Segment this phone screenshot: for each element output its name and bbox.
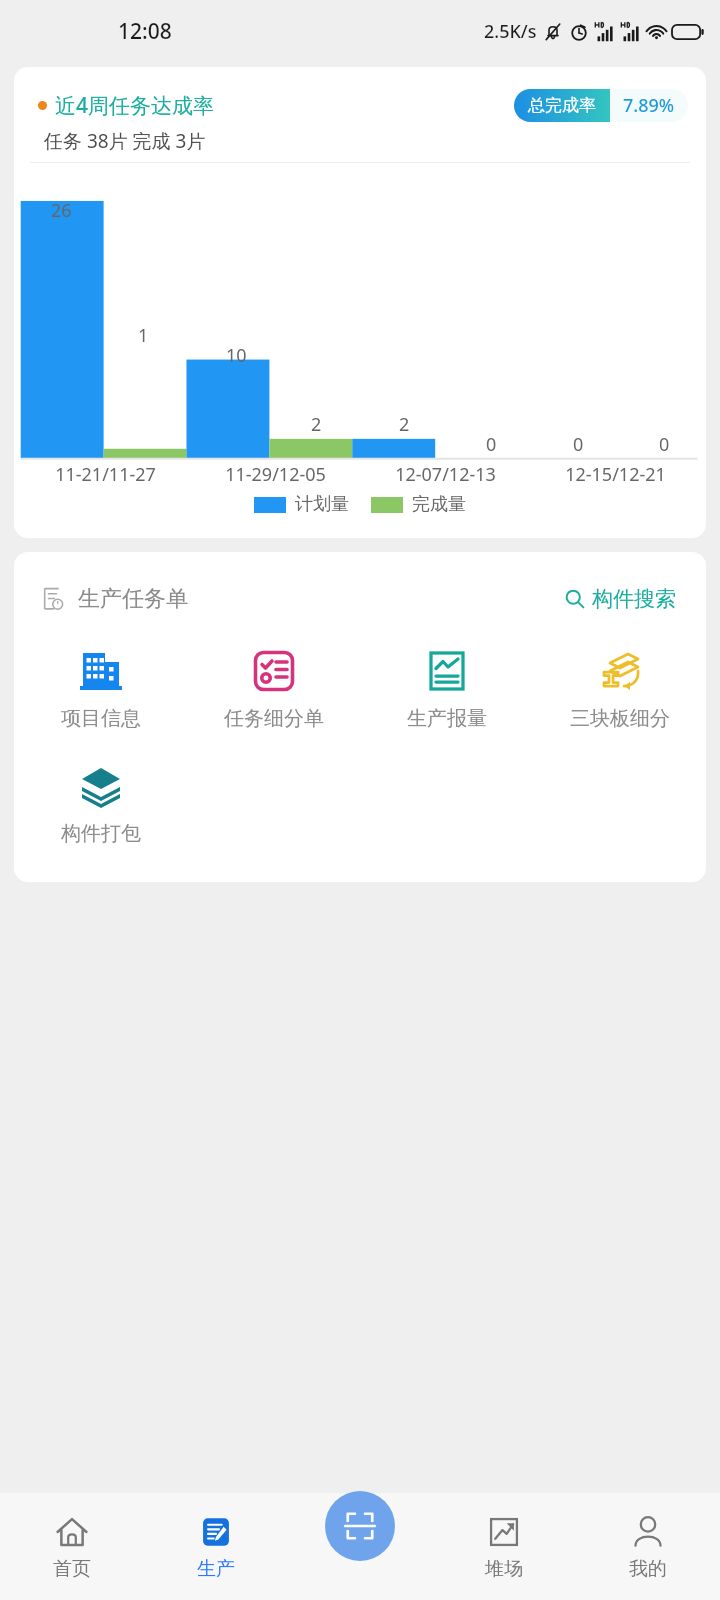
staticText: 0 <box>486 432 497 457</box>
staticText: 我的 <box>629 1557 667 1581</box>
staticText: 生产报量 <box>407 706 487 731</box>
staticText: 三块板细分 <box>570 706 670 731</box>
staticText: 1 <box>138 323 149 348</box>
button[interactable]: 扫一扫 <box>325 1491 395 1561</box>
staticText: 堆场 <box>485 1557 523 1581</box>
staticText: 11-21/11-27 <box>55 462 156 487</box>
staticText: 构件打包 <box>61 821 141 846</box>
staticText: 0 <box>659 432 670 457</box>
button[interactable]: 总完成率 <box>514 89 688 122</box>
staticText: 项目信息 <box>61 706 141 731</box>
staticText: 12:08 <box>118 17 172 46</box>
staticText: 2 <box>311 412 322 437</box>
button[interactable]: 堆场 <box>432 1493 576 1600</box>
staticText: 12-15/12-21 <box>565 462 666 487</box>
staticText: 构件搜索 <box>592 586 676 612</box>
staticText: 近4周任务达成率 <box>55 91 215 120</box>
button[interactable]: 构件打包 <box>14 757 187 850</box>
staticText: 2.5K/s <box>484 19 537 44</box>
staticText: 计划量 <box>295 493 349 516</box>
staticText: 2 <box>399 412 410 437</box>
staticText: 首页 <box>53 1557 91 1581</box>
button[interactable]: 首页 <box>0 1493 144 1600</box>
staticText: 26 <box>51 198 72 223</box>
button[interactable]: 项目信息 <box>14 642 187 735</box>
button[interactable]: 生产报量 <box>360 642 533 735</box>
staticText: 生产 <box>197 1557 235 1581</box>
staticText: 任务细分单 <box>224 706 324 731</box>
button[interactable]: 任务细分单 <box>187 642 360 735</box>
staticText: 任务 38片 完成 3片 <box>44 128 206 154</box>
button[interactable]: 三块板细分 <box>533 642 706 735</box>
staticText: 11-29/12-05 <box>225 462 326 487</box>
staticText: 12-07/12-13 <box>395 462 496 487</box>
staticText: 完成量 <box>412 493 466 516</box>
button[interactable]: 构件搜索 <box>560 582 680 616</box>
button[interactable]: 我的 <box>576 1493 720 1600</box>
staticText: 总完成率 <box>528 95 596 116</box>
staticText: 0 <box>573 432 584 457</box>
staticText: 生产任务单 <box>78 585 188 613</box>
staticText: 7.89% <box>623 93 675 118</box>
button[interactable]: 生产 <box>144 1493 288 1600</box>
staticText: 10 <box>226 343 247 368</box>
